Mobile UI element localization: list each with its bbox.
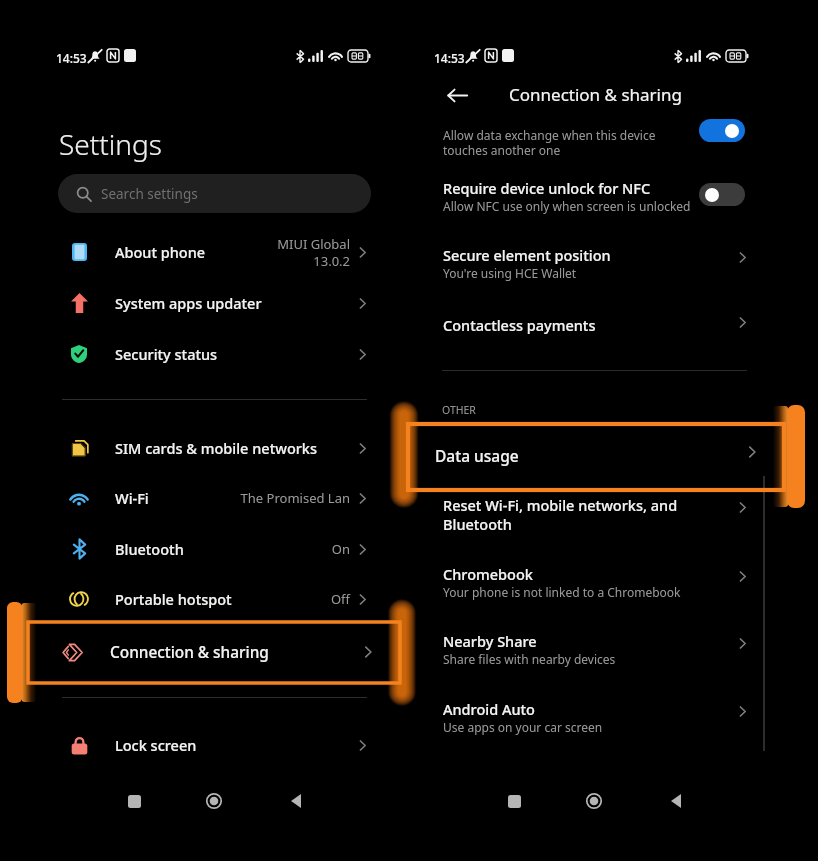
staticText: 14:53 [56,50,87,66]
staticText: Contactless payments [443,315,596,335]
staticText: touches another one [443,142,561,158]
staticText: Chromebook [443,564,533,584]
button[interactable]: Search settings [58,174,371,213]
button[interactable]: Wi-Fi [0,473,409,523]
button[interactable]: Data usage [409,427,818,473]
button[interactable]: Portable hotspot [0,574,409,624]
staticText: Use apps on your car screen [443,719,603,735]
staticText: MIUI Global 13.0.2 [277,235,350,270]
button[interactable]: Nearby Share [409,613,818,669]
staticText: You're using HCE Wallet [443,265,577,281]
button[interactable]: SIM cards & mobile networks [0,423,409,473]
staticText: Your phone is not linked to a Chromebook [443,584,681,600]
staticText: Lock screen [115,735,197,755]
staticText: Search settings [101,185,198,203]
staticText: Settings [59,125,162,163]
staticText: SIM cards & mobile networks [115,438,318,458]
staticText: About phone [115,242,206,262]
staticText: Connection & sharing [509,83,682,106]
staticText: Connection & sharing [110,642,269,663]
staticText: Nearby Share [443,631,537,651]
staticText: On [331,540,350,558]
staticText: OTHER [442,403,476,417]
button[interactable]: Recents [118,785,150,817]
staticText: Security status [115,344,218,364]
staticText: Data usage [435,445,519,466]
button[interactable]: Back [280,785,312,817]
staticText: Allow data exchange when this device [443,127,656,143]
button[interactable]: Chromebook [409,546,818,602]
staticText: 14:53 [434,50,465,66]
staticText: Bluetooth [115,539,184,559]
staticText: The Promised Lan [240,489,350,507]
button[interactable]: Lock screen [0,720,409,770]
staticText: System apps updater [115,293,262,313]
button[interactable]: Back [660,785,692,817]
button[interactable]: Back [441,79,473,111]
staticText: Secure element position [443,245,611,265]
button[interactable]: Android Auto [409,681,818,737]
button[interactable]: System apps updater [0,278,409,328]
button[interactable]: Require device unlock for NFC off [699,183,745,206]
button[interactable]: NFC on [699,119,745,142]
button[interactable]: About phone [0,227,409,277]
button[interactable]: Security status [0,329,409,379]
staticText: Portable hotspot [115,589,232,609]
staticText: Android Auto [443,699,535,719]
staticText: Wi-Fi [115,488,149,508]
staticText: Share files with nearby devices [443,651,616,667]
button[interactable]: Contactless payments [409,297,818,343]
button[interactable]: Require device unlock for NFC [409,160,818,216]
button[interactable]: Recents [498,785,530,817]
button[interactable]: Reset Wi-Fi, mobile networks, and [409,477,818,533]
staticText: Reset Wi-Fi, mobile networks, and [443,495,678,515]
button[interactable]: Connection & sharing [0,627,409,677]
button[interactable]: Home [578,785,610,817]
staticText: Require device unlock for NFC [443,178,651,198]
button[interactable]: Bluetooth [0,524,409,574]
staticText: Off [330,590,350,608]
staticText: Bluetooth [443,514,512,534]
staticText: Allow NFC use only when screen is unlock… [443,198,691,214]
button[interactable]: Home [198,785,230,817]
button[interactable]: Secure element position [409,227,818,283]
